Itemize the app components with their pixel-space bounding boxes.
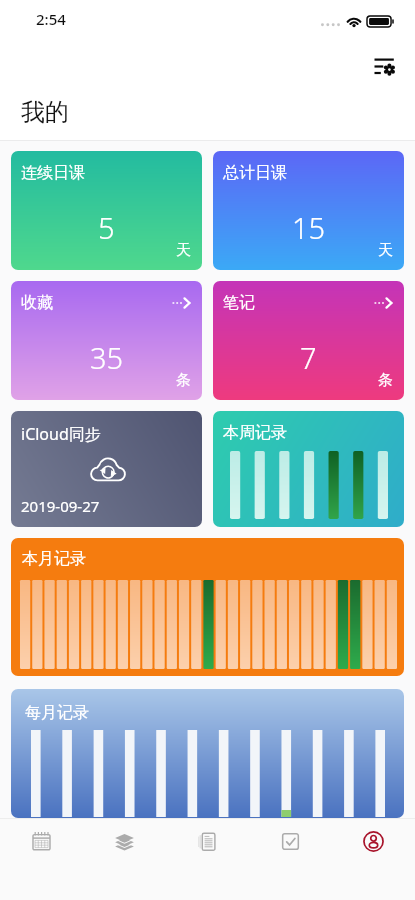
button[interactable]: 每月记录 xyxy=(11,689,404,818)
button[interactable]: 收藏 xyxy=(11,281,202,400)
button[interactable]: 总计日课 xyxy=(213,151,404,270)
staticText: 条 xyxy=(176,371,191,390)
button[interactable]: List settings xyxy=(360,49,408,85)
button[interactable]: 笔记 xyxy=(213,281,404,400)
staticText: 天 xyxy=(176,241,191,260)
staticText: 天 xyxy=(378,241,393,260)
staticText: 收藏 xyxy=(21,293,53,313)
staticText: 连续日课 xyxy=(21,163,85,183)
staticText: 每月记录 xyxy=(25,703,89,723)
staticText: 2019-09-27 xyxy=(21,496,100,516)
button[interactable]: Profile xyxy=(332,818,415,864)
staticText: 本月记录 xyxy=(22,549,86,569)
staticText: iCloud同步 xyxy=(21,423,101,445)
button[interactable]: Notes xyxy=(166,818,249,864)
staticText: 2:54 xyxy=(36,9,66,29)
button[interactable]: 本月记录 xyxy=(11,538,404,676)
staticText: 5 xyxy=(98,208,115,247)
staticText: 条 xyxy=(378,371,393,390)
staticText: 我的 xyxy=(21,97,69,127)
button[interactable]: 连续日课 xyxy=(11,151,202,270)
staticText: 本周记录 xyxy=(223,423,287,443)
button[interactable]: 本周记录 xyxy=(213,411,404,527)
staticText: 15 xyxy=(292,208,326,247)
staticText: 笔记 xyxy=(223,293,255,313)
staticText: 7 xyxy=(300,338,317,377)
button[interactable]: Tasks xyxy=(249,818,332,864)
staticText: 35 xyxy=(90,338,124,377)
button[interactable]: Layers xyxy=(83,818,166,864)
button[interactable]: Calendar xyxy=(0,818,83,864)
staticText: 总计日课 xyxy=(223,163,287,183)
button[interactable]: iCloud同步 xyxy=(11,411,202,527)
